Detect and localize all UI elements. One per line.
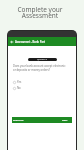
- staticText: PREVIOUS: [13, 119, 24, 122]
- button[interactable]: Back: [8, 37, 76, 46]
- other: Back: [10, 40, 14, 44]
- staticText: Does your bank account accept electronic: [13, 64, 66, 68]
- staticText: No: [17, 86, 21, 90]
- button[interactable]: Yes: [13, 80, 76, 84]
- staticText: Complete your Assessment: [0, 5, 82, 20]
- button[interactable]: No: [13, 86, 76, 90]
- staticText: Question 5: [37, 58, 48, 61]
- button[interactable]: PREVIOUS: [12, 117, 72, 123]
- staticText: Assessment - Bank Part: [15, 40, 46, 44]
- staticText: Yes: [17, 80, 22, 84]
- staticText: or deposits or money orders?: [13, 68, 50, 72]
- staticText: NEXT: [62, 119, 68, 122]
